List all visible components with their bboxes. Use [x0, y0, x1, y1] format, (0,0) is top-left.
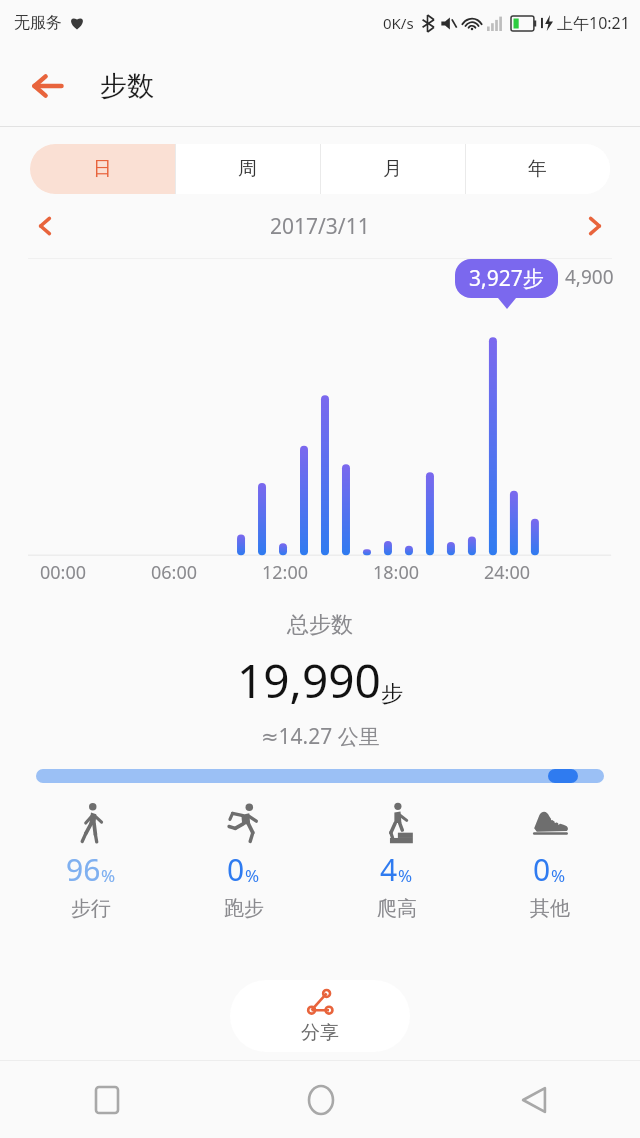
staticText: 4	[380, 849, 398, 890]
button[interactable]: Back	[20, 58, 76, 114]
button[interactable]: Previous day	[22, 203, 68, 249]
staticText: 跑步	[224, 896, 264, 921]
button[interactable]: Recents	[0, 1061, 214, 1138]
staticText: 19,990	[237, 649, 381, 712]
staticText: 步数	[100, 69, 154, 103]
button[interactable]: 0	[473, 801, 626, 921]
staticText: 爬高	[377, 896, 417, 921]
staticText: 步行	[71, 896, 111, 921]
button[interactable]: 月	[320, 144, 465, 194]
staticText: 96	[66, 849, 101, 890]
staticText: 4,900	[565, 264, 614, 290]
button[interactable]: 周	[175, 144, 320, 194]
staticText: ≈14.27 公里	[261, 722, 380, 751]
staticText: %	[245, 864, 260, 887]
staticText: 月	[383, 157, 402, 181]
button[interactable]: 年	[465, 144, 610, 194]
staticText: 2017/3/11	[270, 212, 370, 241]
staticText: 上午10:21	[557, 12, 630, 34]
button[interactable]: Home	[214, 1061, 427, 1138]
button[interactable]: 分享	[230, 980, 410, 1052]
staticText: 分享	[301, 1021, 339, 1045]
staticText: 24:00	[484, 560, 531, 585]
button[interactable]: 4	[320, 801, 473, 921]
staticText: %	[551, 864, 566, 887]
staticText: 其他	[530, 896, 570, 921]
staticText: 06:00	[151, 560, 198, 585]
staticText: 18:00	[373, 560, 420, 585]
staticText: 12:00	[262, 560, 309, 585]
button[interactable]: Back	[427, 1061, 640, 1138]
staticText: %	[101, 864, 116, 887]
staticText: 0	[533, 849, 551, 890]
button[interactable]: 96	[14, 801, 167, 921]
button[interactable]: 0	[167, 801, 320, 921]
staticText: 无服务	[14, 13, 62, 33]
staticText: 年	[528, 157, 547, 181]
staticText: 00:00	[40, 560, 87, 585]
button[interactable]: Next day	[572, 203, 618, 249]
staticText: 3,927步	[469, 264, 544, 293]
staticText: 步	[381, 680, 403, 708]
staticText: 周	[238, 157, 257, 181]
staticText: 0K/s	[383, 13, 414, 33]
button[interactable]: 日	[30, 144, 175, 194]
staticText: %	[398, 864, 413, 887]
staticText: 日	[93, 157, 112, 181]
staticText: 总步数	[287, 611, 353, 639]
staticText: 0	[227, 849, 245, 890]
